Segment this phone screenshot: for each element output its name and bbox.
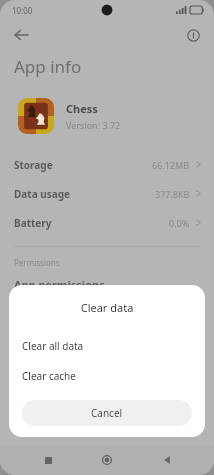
staticText: 66.12MB	[152, 159, 190, 171]
staticText: Version: 3.72	[66, 119, 121, 131]
button[interactable]: Back	[8, 22, 34, 48]
staticText: App permissions	[14, 277, 105, 292]
button[interactable]: Battery	[0, 208, 214, 237]
button[interactable]: Data usage	[0, 179, 214, 208]
staticText: Storage	[14, 158, 53, 172]
button[interactable]: About	[180, 22, 206, 48]
staticText: Clear data	[9, 300, 205, 315]
staticText: 377.8KB	[155, 188, 190, 200]
staticText: 10:00	[12, 5, 33, 16]
button[interactable]: Cancel	[22, 400, 192, 426]
staticText: 0.0%	[169, 217, 190, 229]
staticText: Clear cache	[22, 369, 76, 383]
button[interactable]: Recents	[36, 448, 60, 472]
button[interactable]: Back	[155, 448, 179, 472]
staticText: Chess	[66, 101, 98, 116]
staticText: Clear all data	[22, 339, 84, 353]
button[interactable]: Clear all data	[9, 331, 205, 361]
button[interactable]: Storage	[0, 150, 214, 179]
button[interactable]: Clear cache	[9, 361, 205, 391]
staticText: Battery	[14, 216, 52, 230]
staticText: Permissions	[14, 257, 60, 268]
button[interactable]: Home	[95, 448, 119, 472]
staticText: Data usage	[14, 187, 71, 201]
staticText: Cancel	[91, 406, 123, 420]
staticText: App info	[14, 55, 82, 78]
